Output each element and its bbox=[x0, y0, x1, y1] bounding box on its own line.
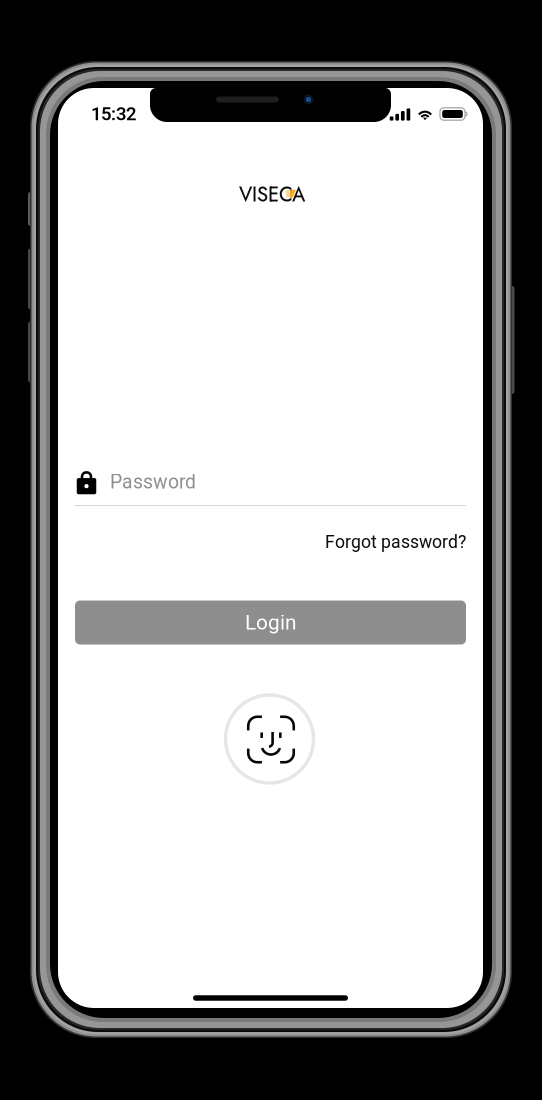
button[interactable]: Login bbox=[75, 600, 466, 644]
button[interactable]: Sign in with Face ID bbox=[225, 695, 313, 783]
staticText: 15:32 bbox=[91, 103, 136, 125]
staticText: Login bbox=[245, 610, 296, 635]
staticText: Forgot password? bbox=[325, 532, 466, 552]
staticText: VISECA bbox=[239, 180, 305, 209]
staticText: Password bbox=[110, 471, 196, 493]
button[interactable]: Forgot password? bbox=[75, 523, 466, 561]
